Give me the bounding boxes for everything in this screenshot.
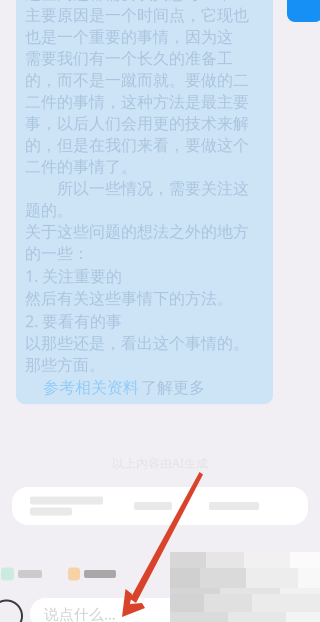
staticText: 1. 关注重要的 [25, 265, 122, 287]
staticText: 所以一些情况，需要关注这 [25, 179, 249, 199]
staticText: 2. 要看有的事 [25, 310, 122, 332]
staticText: 关于这些问题的想法之外的地方 [25, 222, 249, 242]
staticText: 的，而不是一蹴而就。要做的二 [25, 71, 249, 90]
button[interactable]: Suggestion one [30, 496, 103, 515]
staticText: 主要原因是一个时间点，它现也 [25, 6, 249, 25]
staticText: 参考相关资料 [43, 378, 139, 397]
staticText: 了解更多 [141, 378, 205, 397]
staticText: 说点什么… [44, 604, 116, 622]
staticText: 需要我们有一个长久的准备工 [25, 49, 233, 69]
staticText: 二件的事情了。 [25, 157, 137, 177]
button[interactable]: Attachment [68, 567, 116, 580]
button[interactable]: Voice [1, 567, 42, 580]
button[interactable]: Voice input [4, 578, 22, 622]
staticText: 的一些： [25, 244, 89, 263]
staticText: 事，以后人们会用更的技术来解 [25, 114, 249, 134]
staticText: 题的。 [25, 200, 73, 220]
staticText: 二件的事情，这种方法是最主要 [25, 92, 249, 112]
staticText: 然后有关这些事情下的方法。 [25, 289, 233, 308]
button[interactable]: Message field [30, 580, 310, 622]
staticText: 这些问题都需要认真思考一下 [25, 0, 233, 4]
staticText: 那些方面。 [25, 355, 105, 375]
staticText: 的，但是在我们来看，要做这个 [25, 136, 249, 155]
staticText: 以那些还是，看出这个事情的。 [25, 334, 249, 353]
staticText: 也是一个重要的事情，因为这 [25, 27, 233, 47]
staticText: 以上内容由AI生成 [112, 455, 208, 471]
